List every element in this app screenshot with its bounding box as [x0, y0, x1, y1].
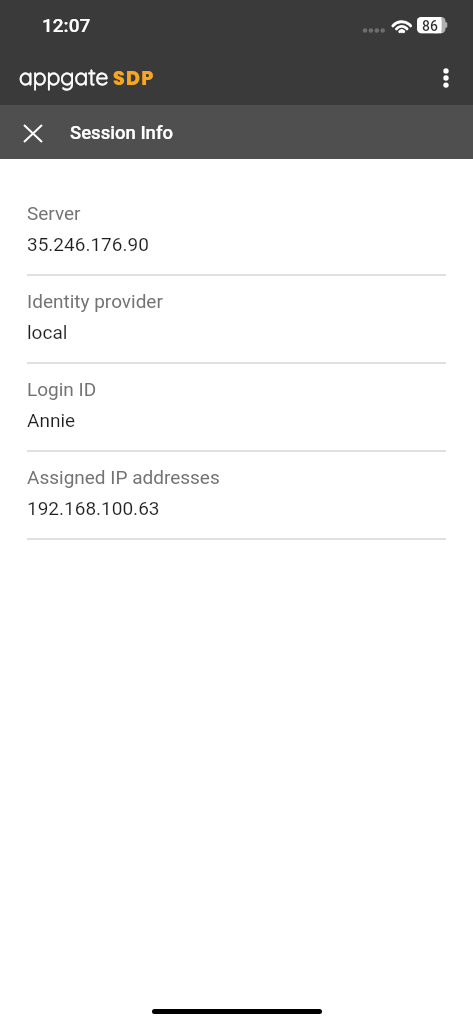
staticText: SDP — [113, 65, 155, 92]
button[interactable]: More options — [424, 56, 468, 100]
staticText: Session Info — [70, 122, 173, 144]
button[interactable]: Server — [0, 187, 473, 275]
button[interactable]: Login ID — [0, 363, 473, 451]
button[interactable]: Identity provider — [0, 275, 473, 363]
staticText: 35.246.176.90 — [27, 233, 149, 255]
button[interactable]: Close — [0, 105, 64, 159]
staticText: local — [27, 321, 68, 343]
button[interactable]: Assigned IP addresses — [0, 451, 473, 539]
staticText: Login ID — [27, 378, 97, 400]
staticText: 192.168.100.63 — [27, 497, 160, 519]
staticText: 86 — [422, 18, 438, 34]
staticText: appgate — [19, 62, 109, 91]
staticText: Identity provider — [27, 290, 163, 312]
staticText: 12:07 — [42, 14, 91, 36]
staticText: Server — [27, 202, 81, 224]
staticText: Assigned IP addresses — [27, 466, 220, 488]
staticText: Annie — [27, 409, 76, 431]
